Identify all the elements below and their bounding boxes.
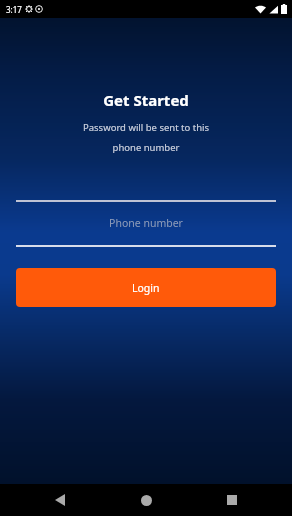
staticText: 3:17 [6, 4, 22, 15]
button[interactable]: Phone number [16, 216, 276, 247]
staticText: Login [132, 281, 160, 295]
button[interactable]: Home [120, 484, 172, 516]
button[interactable] [16, 180, 276, 202]
staticText: Phone number [16, 216, 276, 230]
staticText: Get Started [0, 90, 292, 110]
staticText: Password will be sent to this [0, 121, 292, 134]
button[interactable]: Back [34, 484, 86, 516]
button[interactable]: Recent apps [206, 484, 258, 516]
button[interactable]: Login [16, 268, 276, 307]
staticText: phone number [0, 141, 292, 154]
